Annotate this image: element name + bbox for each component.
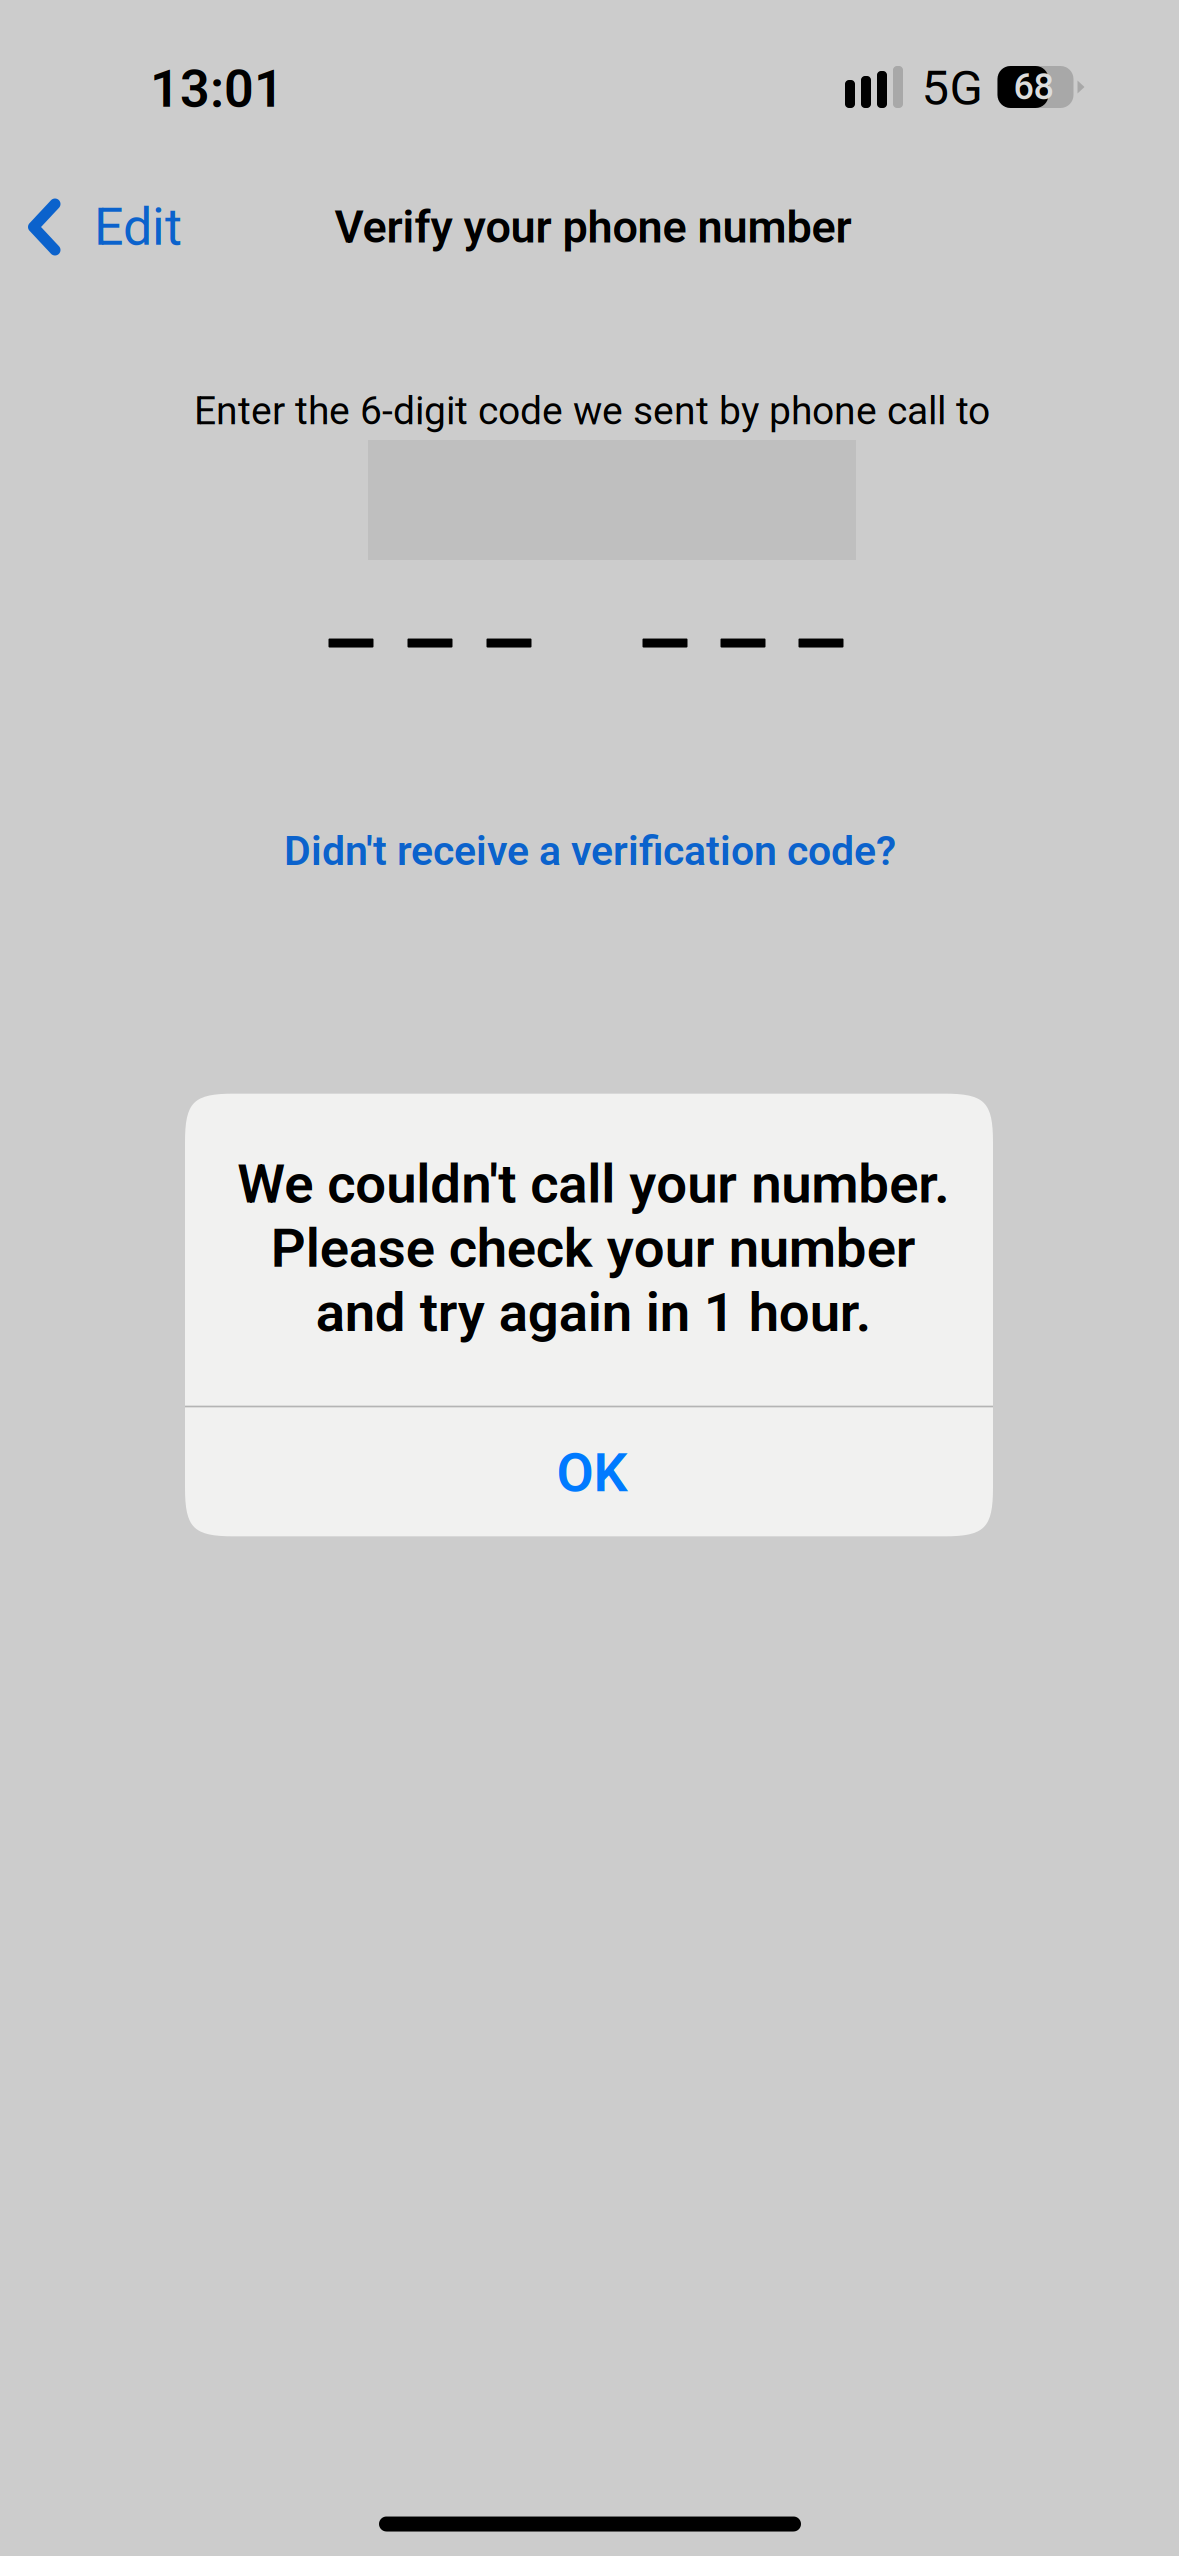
staticText: 5G	[921, 59, 982, 117]
button[interactable]: Didn't receive a verification code?	[260, 807, 920, 895]
staticText: 13:01	[150, 58, 284, 119]
staticText: Edit	[94, 196, 182, 257]
staticText: Enter the 6-digit code we sent by phone …	[194, 388, 990, 434]
button[interactable]: Edit	[4, 176, 206, 277]
staticText: We couldn't call your number. Please che…	[237, 1152, 949, 1344]
staticText: 68	[1013, 66, 1053, 108]
button[interactable]: OK	[185, 1407, 993, 1536]
staticText: OK	[556, 1441, 627, 1504]
staticText: Verify your phone number	[334, 201, 851, 253]
staticText: Didn't receive a verification code?	[284, 827, 896, 875]
